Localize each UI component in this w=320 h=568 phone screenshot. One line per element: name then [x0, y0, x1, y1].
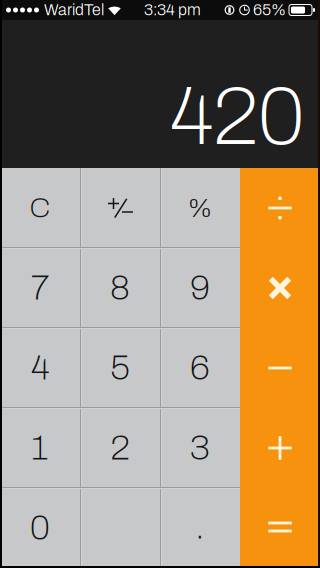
button[interactable]: 9	[160, 248, 240, 328]
staticText: 3	[190, 429, 210, 467]
button[interactable]: 6	[160, 328, 240, 408]
staticText: 65%	[253, 1, 286, 19]
staticText: 4	[31, 349, 49, 387]
staticText: C	[29, 193, 50, 223]
staticText: 0	[30, 509, 50, 547]
button[interactable]: Equals	[240, 488, 320, 568]
staticText: .	[195, 508, 204, 546]
button[interactable]: 5	[80, 328, 160, 408]
staticText: 5	[110, 349, 130, 387]
button[interactable]: Divide	[240, 168, 320, 248]
button[interactable]: 7	[0, 248, 80, 328]
button[interactable]: Multiply	[240, 248, 320, 328]
staticText: 3:34 pm	[144, 1, 201, 19]
button[interactable]: .	[160, 488, 240, 568]
staticText: 6	[190, 349, 210, 387]
staticText: 420	[170, 72, 304, 161]
staticText: 7	[31, 269, 49, 307]
staticText: 9	[190, 269, 210, 307]
button[interactable]: Subtract	[240, 328, 320, 408]
button[interactable]: 8	[80, 248, 160, 328]
staticText: 8	[110, 269, 130, 307]
staticText: 2	[110, 429, 129, 467]
button[interactable]: Add	[240, 408, 320, 488]
staticText: 1	[32, 429, 48, 467]
button[interactable]: %	[160, 168, 240, 248]
button[interactable]: 1	[0, 408, 80, 488]
button[interactable]: 3	[160, 408, 240, 488]
button[interactable]: 4	[0, 328, 80, 408]
button[interactable]: 2	[80, 408, 160, 488]
staticText: %	[187, 193, 212, 222]
button[interactable]: C	[0, 168, 80, 248]
button[interactable]: Plus Minus	[80, 168, 160, 248]
staticText: WaridTel	[44, 1, 104, 19]
button[interactable]: 0	[0, 488, 160, 568]
